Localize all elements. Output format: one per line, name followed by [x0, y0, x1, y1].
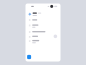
button[interactable] — [29, 40, 57, 43]
button[interactable]: New chat — [27, 55, 31, 59]
button[interactable] — [29, 31, 57, 33]
button[interactable] — [29, 24, 57, 28]
button[interactable] — [29, 19, 57, 21]
button[interactable] — [29, 36, 57, 38]
